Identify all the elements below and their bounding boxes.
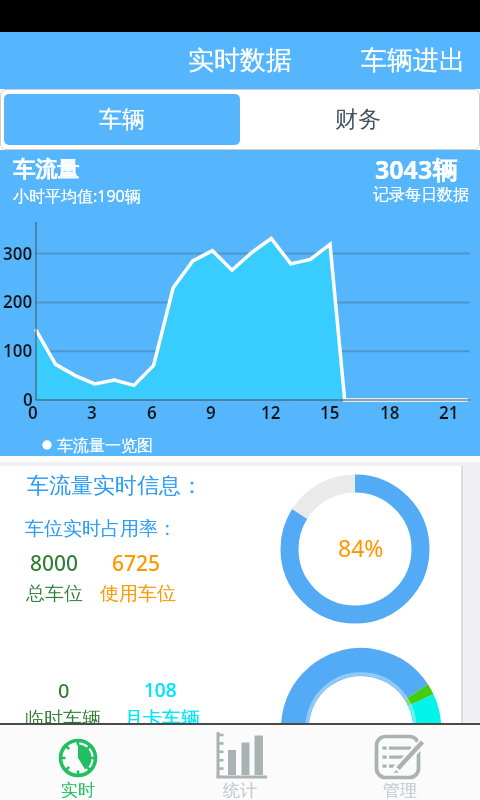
staticText: 8000 — [30, 549, 79, 578]
staticText: 车位实时占用率： — [25, 517, 177, 541]
button[interactable]: 车辆 — [4, 94, 240, 145]
staticText: 15 — [320, 401, 340, 424]
button[interactable]: 实时 — [0, 725, 160, 800]
staticText: 管理 — [383, 780, 417, 800]
button[interactable]: 实时数据 — [188, 44, 292, 77]
staticText: 实时 — [61, 780, 95, 800]
staticText: 车辆 — [99, 105, 145, 134]
staticText: 6 — [147, 401, 157, 424]
button[interactable]: 管理 — [320, 725, 480, 800]
staticText: 使用车位 — [100, 582, 176, 606]
staticText: 18 — [380, 401, 400, 424]
staticText: 84% — [338, 532, 384, 563]
staticText: 总车位 — [26, 582, 83, 606]
staticText: 108 — [144, 677, 177, 703]
staticText: 实时数据 — [188, 44, 292, 77]
staticText: 0 — [58, 677, 70, 704]
staticText: 财务 — [335, 105, 381, 134]
button[interactable]: 财务 — [240, 94, 476, 145]
staticText: 统计 — [223, 780, 257, 800]
staticText: 车流量 — [13, 156, 79, 184]
staticText: 9 — [206, 401, 216, 424]
staticText: 小时平均值:190辆 — [13, 185, 141, 207]
staticText: 车流量实时信息： — [27, 472, 203, 500]
button[interactable]: 统计 — [160, 725, 320, 800]
staticText: 车流量一览图 — [57, 436, 153, 456]
staticText: 100 — [3, 339, 33, 362]
staticText: 0 — [23, 388, 33, 411]
staticText: 6725 — [112, 549, 161, 578]
staticText: 200 — [3, 290, 33, 313]
staticText: 12 — [261, 401, 281, 424]
staticText: 21 — [439, 401, 459, 424]
button[interactable]: 车辆进出 — [361, 44, 465, 77]
staticText: 记录每日数据 — [373, 185, 469, 205]
staticText: 临时车辆 — [25, 707, 101, 723]
staticText: 0 — [28, 401, 38, 424]
staticText: 月卡车辆 — [124, 707, 200, 723]
staticText: 300 — [3, 242, 33, 265]
staticText: 3043辆 — [375, 152, 458, 186]
staticText: 3 — [87, 401, 97, 424]
staticText: 车辆进出 — [361, 44, 465, 77]
